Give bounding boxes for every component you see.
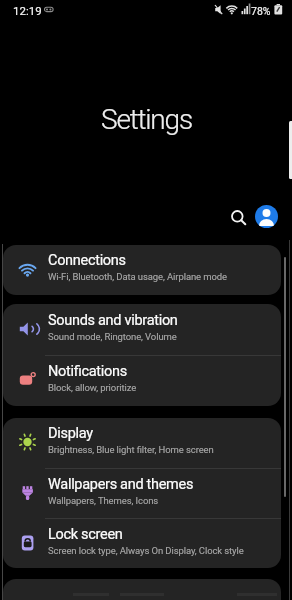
button[interactable]: Display (3, 418, 281, 468)
staticText: Notifications (48, 363, 127, 380)
staticText: Connections (48, 252, 126, 269)
button[interactable]: Sounds and vibration (3, 304, 281, 355)
staticText: 78% (251, 5, 271, 17)
staticText: Screen lock type, Always On Display, Clo… (48, 545, 244, 556)
staticText: 12:19 (13, 4, 42, 17)
staticText: Sounds and vibration (48, 312, 178, 329)
staticText: Display (48, 425, 93, 442)
staticText: Brightness, Blue light filter, Home scre… (48, 444, 214, 455)
button[interactable]: Connections (3, 245, 281, 295)
staticText: Wi-Fi, Bluetooth, Data usage, Airplane m… (48, 271, 228, 282)
button[interactable]: Lock screen (3, 519, 281, 568)
button[interactable] (255, 205, 278, 228)
button[interactable] (230, 209, 250, 229)
staticText: Sound mode, Ringtone, Volume (48, 331, 177, 342)
staticText: Wallpapers, Themes, Icons (48, 495, 159, 506)
button[interactable]: Wallpapers and themes (3, 469, 281, 518)
staticText: Lock screen (48, 526, 123, 543)
staticText: Settings (101, 103, 192, 136)
button[interactable]: Notifications (3, 356, 281, 406)
staticText: Wallpapers and themes (48, 476, 194, 493)
staticText: Block, allow, prioritize (48, 382, 137, 393)
